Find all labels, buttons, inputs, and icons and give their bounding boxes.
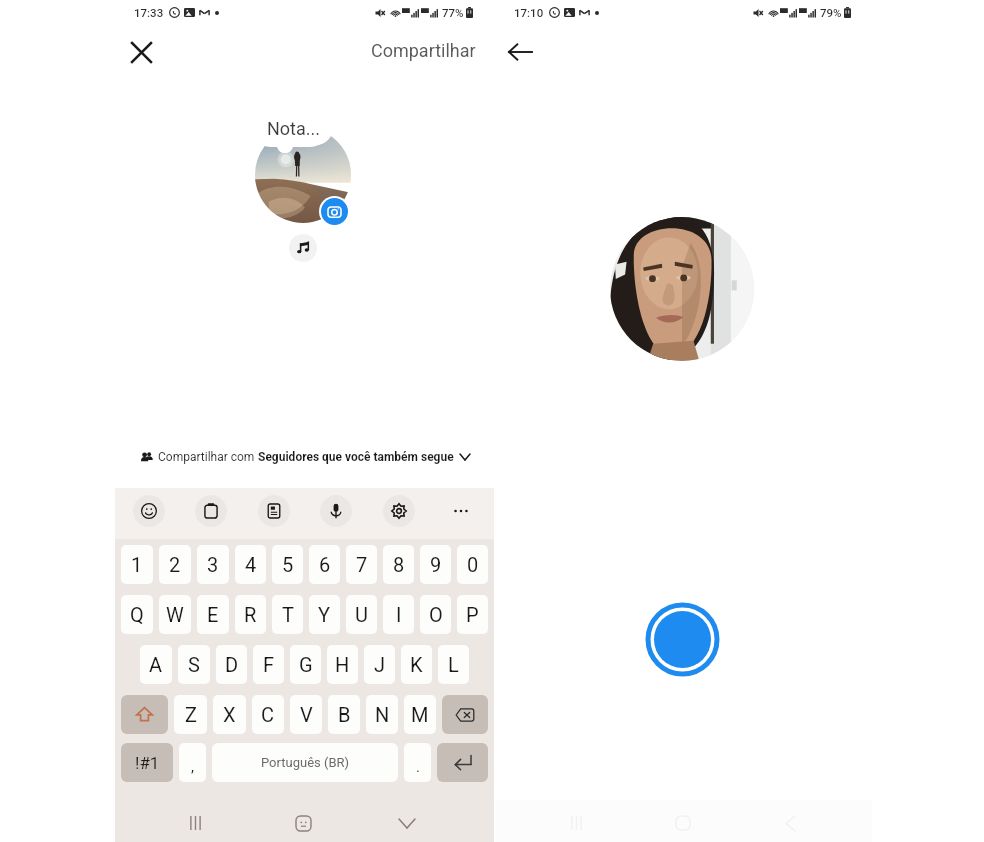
button[interactable]: Emoji	[133, 495, 165, 527]
button[interactable]: Enter	[437, 743, 488, 782]
staticText: I	[396, 603, 402, 626]
button[interactable]: Z	[174, 695, 207, 734]
button[interactable]: P	[457, 595, 488, 634]
staticText: Z	[185, 703, 197, 726]
staticText: .	[416, 758, 420, 776]
button[interactable]: X	[213, 695, 246, 734]
button[interactable]: Texto	[258, 495, 290, 527]
staticText: B	[338, 703, 351, 726]
staticText: M	[411, 703, 429, 726]
staticText: Seguidores que você também segue	[258, 450, 454, 464]
button[interactable]: I	[383, 595, 414, 634]
button[interactable]: 4	[235, 545, 266, 584]
staticText: N	[375, 703, 390, 726]
staticText: 79%	[820, 6, 842, 19]
staticText: W	[166, 603, 184, 626]
staticText: 3	[207, 553, 219, 576]
staticText: O	[429, 603, 443, 626]
button[interactable]: Voz	[320, 495, 352, 527]
button[interactable]: Shift	[121, 695, 168, 734]
staticText: U	[355, 603, 368, 626]
button[interactable]: T	[272, 595, 303, 634]
button[interactable]: Início	[283, 803, 323, 842]
button[interactable]: R	[235, 595, 266, 634]
staticText: 6	[319, 553, 331, 576]
button[interactable]: K	[401, 645, 432, 684]
staticText: Português (BR)	[261, 755, 350, 770]
button[interactable]: 8	[383, 545, 414, 584]
staticText: V	[300, 703, 313, 726]
button[interactable]: 0	[457, 545, 488, 584]
staticText: Nota...	[267, 118, 321, 139]
button[interactable]: 3	[197, 545, 229, 584]
button[interactable]: O	[420, 595, 451, 634]
staticText: !#1	[135, 753, 160, 773]
staticText: X	[223, 703, 236, 726]
button[interactable]: J	[364, 645, 395, 684]
button[interactable]: Câmera	[321, 198, 348, 225]
button[interactable]: W	[159, 595, 191, 634]
staticText: R	[244, 603, 257, 626]
button[interactable]: G	[290, 645, 321, 684]
button[interactable]: C	[252, 695, 284, 734]
button[interactable]: A	[140, 645, 172, 684]
button[interactable]: F	[253, 645, 284, 684]
button[interactable]: !#1	[121, 743, 173, 782]
button[interactable]: ,	[179, 743, 206, 782]
button[interactable]: Recentes	[175, 803, 215, 842]
button[interactable]: Música	[289, 234, 317, 262]
staticText: S	[188, 653, 200, 676]
staticText: 7	[356, 553, 368, 576]
button[interactable]: Fechar	[121, 32, 161, 72]
button[interactable]: Português (BR)	[212, 743, 398, 782]
button[interactable]: Voltar	[500, 32, 540, 72]
staticText: E	[207, 603, 219, 626]
staticText: 2	[169, 553, 181, 576]
button[interactable]: Compartilhar com	[141, 445, 470, 469]
button[interactable]: Área de transferência	[195, 495, 227, 527]
button[interactable]: Configurações	[383, 495, 415, 527]
button[interactable]: Q	[121, 595, 153, 634]
staticText: L	[448, 653, 459, 676]
staticText: 8	[393, 553, 405, 576]
button[interactable]: E	[197, 595, 229, 634]
staticText: D	[225, 653, 239, 676]
button[interactable]: 1	[121, 545, 153, 584]
staticText: J	[374, 653, 386, 676]
button[interactable]: Apagar	[442, 695, 488, 734]
button[interactable]: V	[290, 695, 322, 734]
staticText: 4	[245, 553, 257, 576]
staticText: 77%	[442, 6, 464, 19]
button[interactable]: 2	[159, 545, 191, 584]
button[interactable]: N	[366, 695, 398, 734]
button[interactable]: H	[327, 645, 358, 684]
staticText: 0	[467, 553, 479, 576]
button[interactable]: 6	[309, 545, 340, 584]
button[interactable]: Y	[309, 595, 340, 634]
staticText: P	[466, 603, 479, 626]
button[interactable]: B	[328, 695, 360, 734]
button[interactable]: Mais	[445, 495, 477, 527]
button[interactable]: 5	[272, 545, 303, 584]
staticText: F	[263, 653, 275, 676]
staticText: C	[261, 703, 275, 726]
button[interactable]: S	[178, 645, 210, 684]
button[interactable]: U	[346, 595, 377, 634]
button[interactable]: Compartilhar	[371, 40, 476, 61]
button[interactable]: 7	[346, 545, 377, 584]
button[interactable]: D	[216, 645, 247, 684]
button[interactable]: .	[404, 743, 431, 782]
staticText: Compartilhar com	[158, 450, 258, 464]
button[interactable]: Nota...	[255, 111, 333, 145]
button[interactable]: L	[438, 645, 469, 684]
staticText: 5	[282, 553, 294, 576]
button[interactable]: Capturar	[645, 602, 720, 677]
staticText: 17:10	[514, 6, 544, 19]
button[interactable]: Ocultar teclado	[387, 803, 427, 842]
staticText: Y	[318, 603, 331, 626]
button[interactable]: 9	[420, 545, 451, 584]
button[interactable]: M	[404, 695, 436, 734]
